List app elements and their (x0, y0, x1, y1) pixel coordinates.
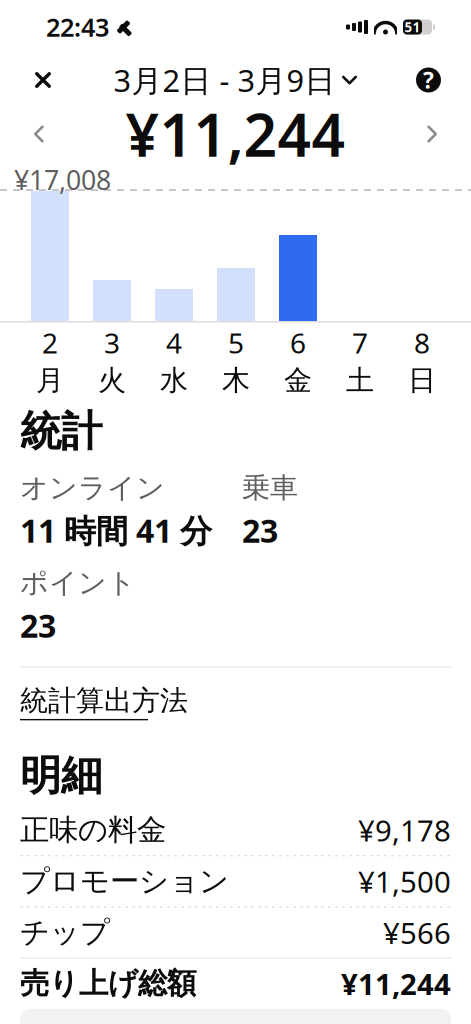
button[interactable]: Next week (411, 116, 453, 152)
staticText: 乗車 (242, 471, 298, 505)
button[interactable]: Previous week (18, 116, 60, 152)
staticText: 51 (404, 18, 420, 36)
button[interactable]: Close (16, 57, 70, 103)
staticText: ¥1,500 (358, 862, 451, 901)
staticText: 正味の料金 (20, 812, 166, 848)
staticText: 11 時間 41 分 (20, 509, 212, 552)
staticText: 3 (104, 324, 120, 361)
button[interactable]: Help (402, 57, 455, 102)
staticText: 土 (346, 363, 374, 398)
staticText: ¥566 (383, 913, 451, 952)
staticText: ? (423, 65, 434, 95)
staticText: ¥11,244 (341, 964, 451, 1003)
staticText: 6 (290, 324, 306, 361)
staticText: 5 (228, 324, 244, 361)
staticText: 3月2日 - 3月9日 (113, 60, 335, 100)
staticText: チップ (20, 914, 110, 950)
staticText: 23 (242, 509, 278, 552)
staticText: 統計算出方法 (20, 683, 188, 718)
staticText: 火 (98, 363, 126, 398)
staticText: 水 (160, 363, 188, 398)
staticText: 月 (36, 363, 64, 398)
staticText: 統計 (20, 406, 102, 457)
staticText: オンライン (20, 471, 165, 505)
staticText: 22:43 (46, 10, 109, 44)
staticText: 23 (20, 604, 56, 646)
staticText: 金 (284, 363, 312, 398)
staticText: 明細 (20, 750, 102, 801)
staticText: 木 (222, 363, 250, 398)
staticText: ポイント (20, 566, 136, 600)
staticText: 7 (352, 324, 368, 361)
staticText: 8 (414, 324, 430, 361)
staticText: ¥17,008 (14, 162, 111, 197)
staticText: 2 (42, 324, 58, 361)
button[interactable]: 統計算出方法 (20, 667, 188, 728)
staticText: 日 (408, 363, 436, 398)
staticText: 4 (166, 324, 182, 361)
staticText: プロモーション (20, 863, 229, 899)
staticText: ¥11,244 (125, 95, 345, 173)
staticText: ¥9,178 (358, 811, 451, 850)
staticText: 売り上げ総額 (20, 965, 196, 1001)
